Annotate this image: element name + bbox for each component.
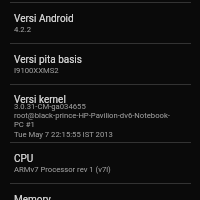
button[interactable]: Memory bbox=[0, 184, 200, 200]
staticText: ARMv7 Processor rev 1 (v7l) bbox=[14, 165, 111, 174]
staticText: PC #1 bbox=[14, 120, 35, 129]
staticText: Versi kernel bbox=[14, 94, 66, 106]
staticText: Versi pita basis bbox=[14, 54, 82, 66]
staticText: Memory bbox=[14, 194, 51, 200]
button[interactable]: Versi kernel bbox=[0, 86, 200, 143]
button[interactable]: CPU bbox=[0, 144, 200, 184]
staticText: CPU bbox=[14, 153, 34, 165]
staticText: root@black-prince-HP-Pavilion-dv6-Notebo… bbox=[14, 111, 170, 120]
staticText: Versi Android bbox=[14, 13, 74, 25]
staticText: 3.0.31-CM-ga034655 bbox=[14, 102, 86, 111]
staticText: I9100XXMS2 bbox=[14, 66, 59, 75]
button[interactable]: Versi pita basis bbox=[0, 44, 200, 85]
staticText: 4.2.2 bbox=[14, 25, 32, 34]
button[interactable]: Versi Android bbox=[0, 3, 200, 43]
staticText: Tue May 7 22:15:55 IST 2013 bbox=[14, 130, 113, 139]
